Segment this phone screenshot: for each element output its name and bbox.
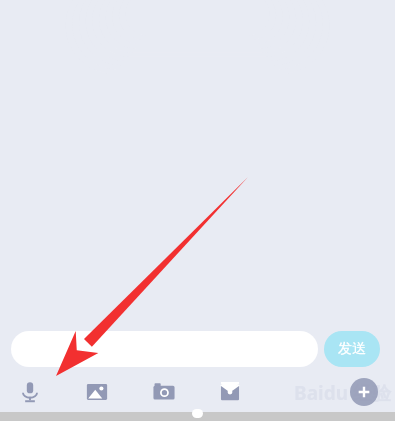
button[interactable]: Photo	[77, 372, 117, 412]
button[interactable]: 发送	[324, 331, 380, 367]
button[interactable]	[11, 331, 318, 367]
button[interactable]: More	[350, 378, 378, 406]
staticText: Baidu 经验	[294, 380, 391, 406]
button[interactable]: Camera	[144, 372, 184, 412]
button[interactable]: Voice	[10, 372, 50, 412]
button[interactable]: Home	[192, 409, 203, 418]
staticText: 发送	[338, 340, 366, 358]
button[interactable]: Gift	[210, 372, 250, 412]
